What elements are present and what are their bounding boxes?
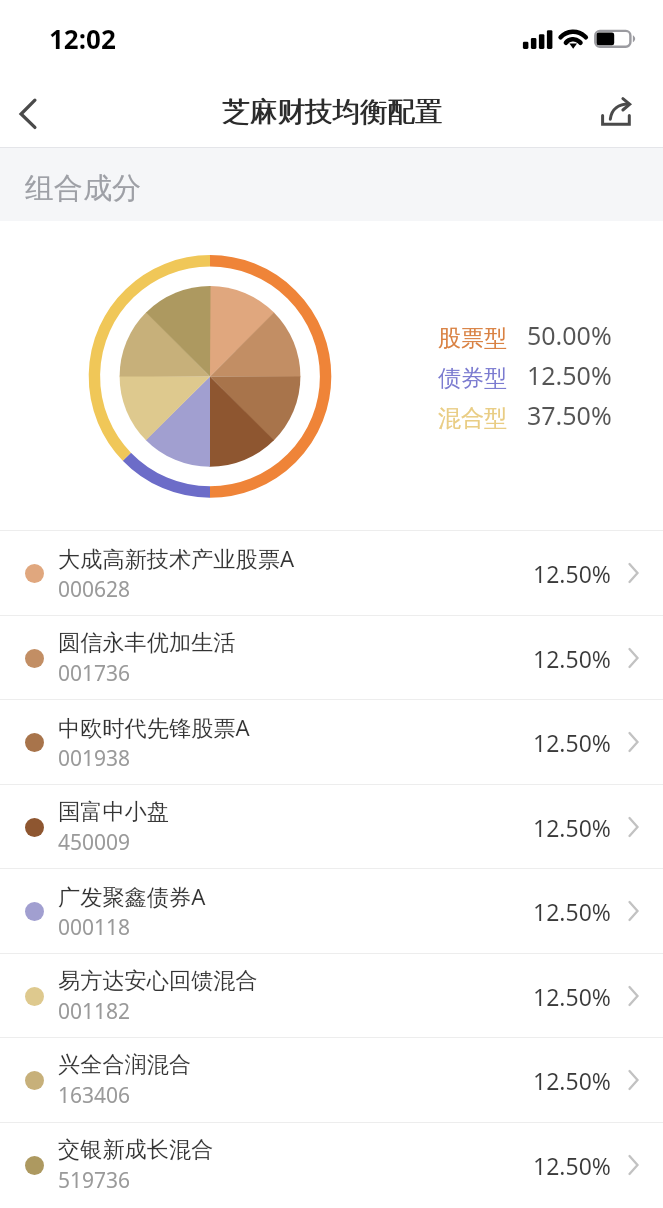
- staticText: 450009: [58, 828, 131, 857]
- staticText: 中欧时代先锋股票A: [58, 712, 250, 742]
- button[interactable]: 国富中小盘: [0, 785, 663, 869]
- staticText: 兴全合润混合: [58, 1051, 192, 1079]
- staticText: 12.50%: [533, 643, 611, 674]
- staticText: 12.50%: [533, 981, 611, 1012]
- staticText: 12.50%: [527, 358, 612, 392]
- staticText: 001736: [58, 659, 131, 688]
- button[interactable]: 交银新成长混合: [0, 1123, 663, 1207]
- button[interactable]: 广发聚鑫债券A: [0, 869, 663, 953]
- button[interactable]: 大成高新技术产业股票A: [0, 531, 663, 615]
- staticText: 50.00%: [527, 318, 612, 352]
- staticText: 易方达安心回馈混合: [58, 967, 258, 995]
- staticText: 国富中小盘: [58, 798, 169, 826]
- staticText: 001182: [58, 997, 131, 1026]
- button[interactable]: Share: [567, 74, 663, 147]
- button[interactable]: 易方达安心回馈混合: [0, 954, 663, 1038]
- staticText: 交银新成长混合: [58, 1136, 214, 1164]
- staticText: 000628: [58, 575, 131, 604]
- staticText: 债券型: [438, 364, 507, 393]
- staticText: 芝麻财技均衡配置: [222, 95, 442, 130]
- staticText: 37.50%: [527, 398, 612, 432]
- button[interactable]: 兴全合润混合: [0, 1038, 663, 1122]
- staticText: 12:02: [49, 21, 116, 56]
- staticText: 广发聚鑫债券A: [58, 881, 206, 911]
- staticText: 001938: [58, 744, 131, 773]
- staticText: 组合成分: [25, 170, 141, 207]
- staticText: 芝麻财技均衡配置: [223, 95, 443, 130]
- button[interactable]: 圆信永丰优加生活: [0, 616, 663, 700]
- staticText: 12.50%: [533, 1150, 611, 1181]
- staticText: 163406: [58, 1081, 131, 1110]
- staticText: 圆信永丰优加生活: [58, 629, 236, 657]
- button[interactable]: Back: [0, 74, 56, 147]
- staticText: 12.50%: [533, 1065, 611, 1096]
- staticText: 12.50%: [533, 812, 611, 843]
- staticText: 12.50%: [533, 727, 611, 758]
- staticText: 混合型: [438, 404, 507, 433]
- staticText: 000118: [58, 913, 131, 942]
- staticText: 12.50%: [533, 896, 611, 927]
- staticText: 大成高新技术产业股票A: [58, 543, 295, 573]
- staticText: 12.50%: [533, 558, 611, 589]
- staticText: 股票型: [438, 324, 507, 353]
- staticText: 519736: [58, 1166, 131, 1195]
- button[interactable]: 中欧时代先锋股票A: [0, 700, 663, 784]
